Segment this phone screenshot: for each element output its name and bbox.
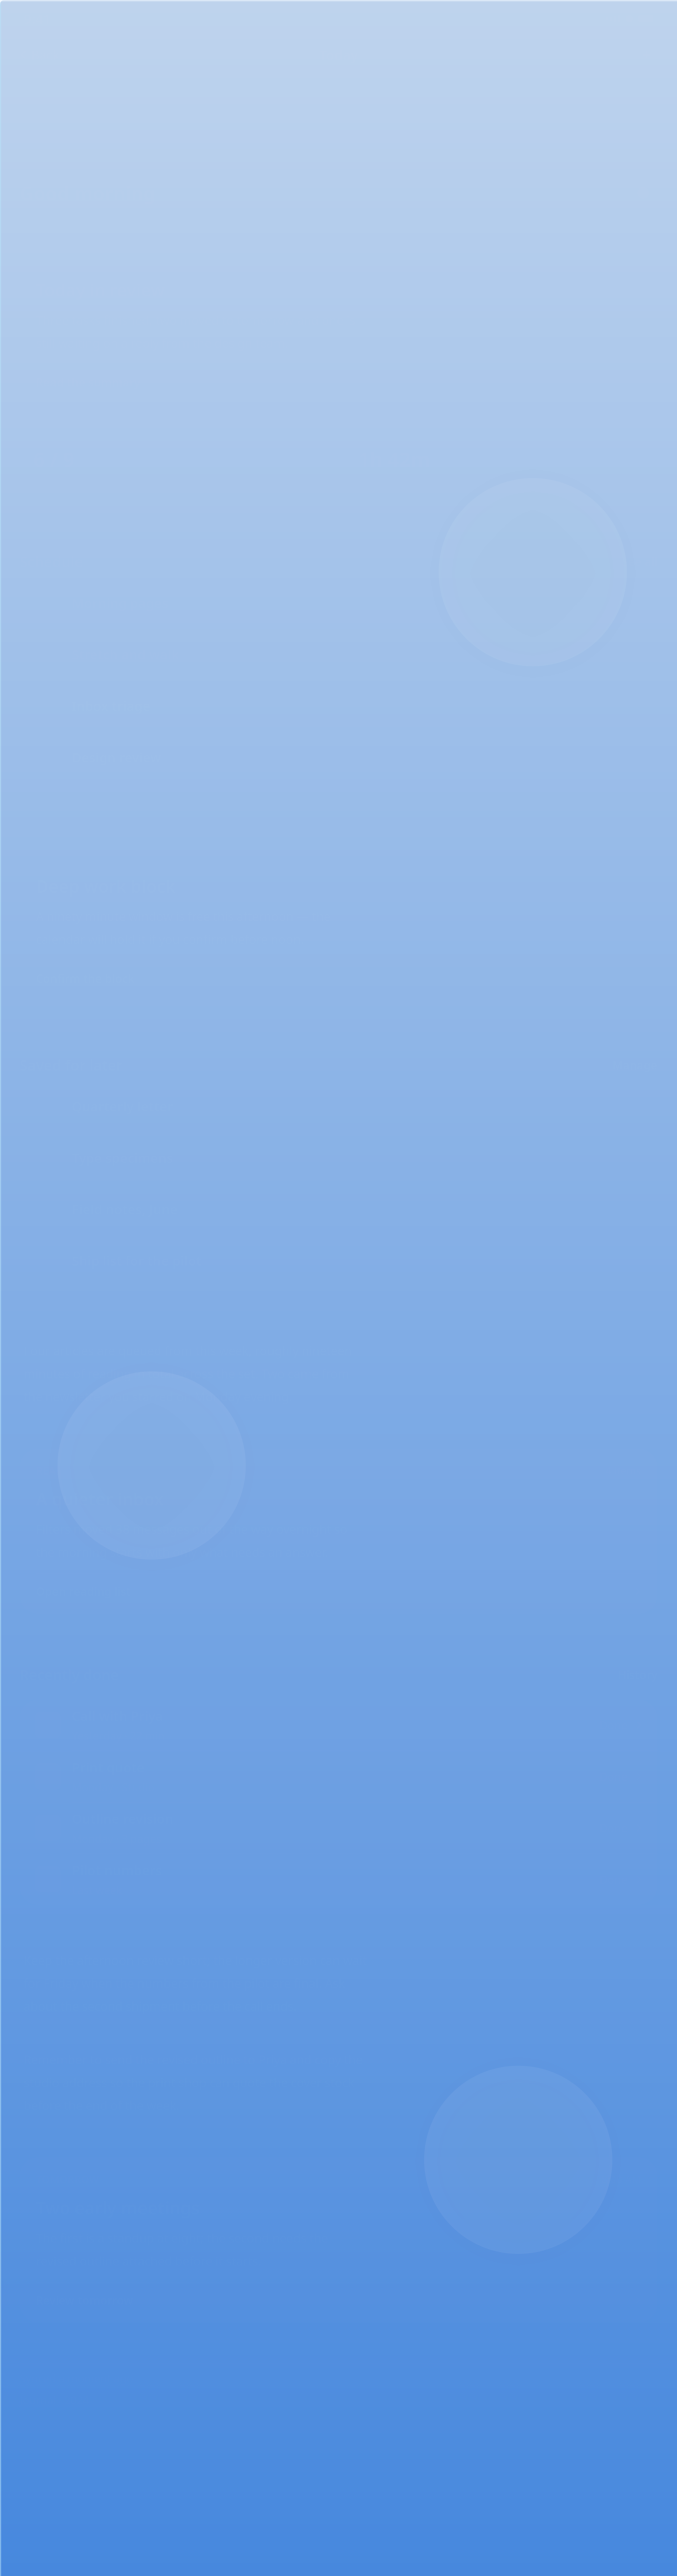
staticText: the morning starts with only what needs … bbox=[36, 1544, 328, 1560]
button[interactable]: TOMORROW bbox=[20, 2157, 657, 2323]
button[interactable]: READING bbox=[20, 1449, 657, 1614]
staticText: Filters moved 38 messages out of the way… bbox=[36, 1521, 347, 1537]
staticText: 8:00 AM bbox=[601, 2172, 641, 2186]
staticText: the newsletter you starred on Monday eve… bbox=[24, 1388, 292, 1405]
